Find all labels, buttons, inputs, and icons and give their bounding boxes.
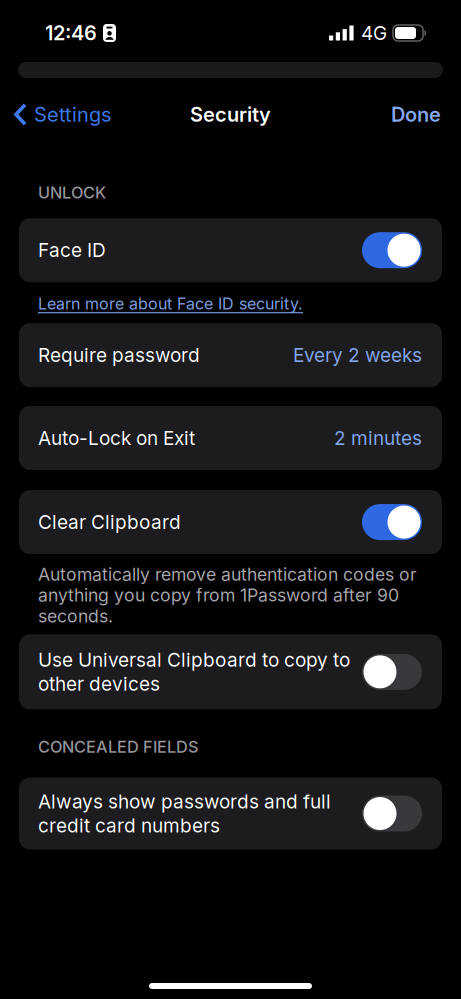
button[interactable]: Use Universal Clipboard to copy to other… <box>362 654 422 690</box>
button[interactable]: Done <box>391 103 461 126</box>
button[interactable]: Always show passwords and full credit ca… <box>362 795 422 831</box>
staticText: Clear Clipboard <box>38 510 181 534</box>
staticText: Require password <box>38 343 200 367</box>
staticText: Use Universal Clipboard to copy to other… <box>38 648 350 696</box>
staticText: Face ID <box>38 238 106 262</box>
staticText: UNLOCK <box>38 183 106 202</box>
button[interactable]: Face ID <box>362 232 422 268</box>
staticText: Learn more about Face ID security. <box>38 294 303 313</box>
staticText: 2 minutes <box>334 426 422 450</box>
staticText: Auto-Lock on Exit <box>38 426 195 450</box>
staticText: Settings <box>34 103 111 126</box>
staticText: CONCEALED FIELDS <box>38 737 199 757</box>
button[interactable]: Settings <box>0 103 111 126</box>
button[interactable]: Learn more about Face ID security. <box>38 294 303 313</box>
staticText: 4G <box>361 22 387 44</box>
staticText: Automatically remove authentication code… <box>38 564 417 626</box>
staticText: Always show passwords and full credit ca… <box>38 789 331 837</box>
button[interactable]: Require password <box>19 323 442 387</box>
button[interactable]: Auto-Lock on Exit <box>19 406 442 470</box>
button[interactable]: Clear Clipboard <box>362 504 422 540</box>
staticText: Done <box>391 103 441 126</box>
staticText: 12:46 <box>45 21 97 45</box>
staticText: Security <box>190 103 271 126</box>
staticText: Every 2 weeks <box>293 343 422 367</box>
